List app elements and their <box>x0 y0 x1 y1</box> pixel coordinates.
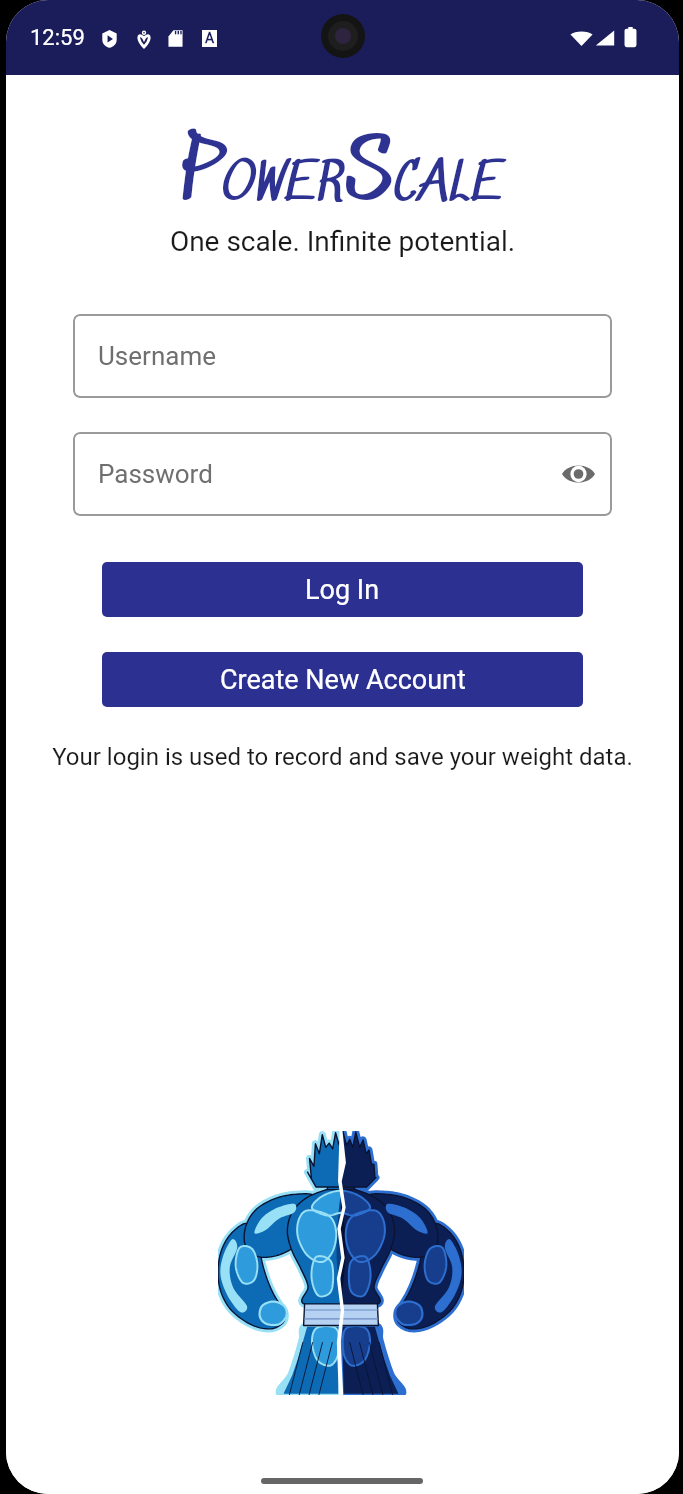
button[interactable]: Log In <box>102 562 583 617</box>
button[interactable]: Show password <box>556 452 600 496</box>
staticText: Your login is used to record and save yo… <box>6 743 679 771</box>
button[interactable]: Create New Account <box>102 652 583 707</box>
staticText: One scale. Infinite potential. <box>6 225 679 258</box>
staticText: 12:59 <box>30 25 85 51</box>
staticText: Username <box>98 341 216 371</box>
staticText: Password <box>98 459 213 489</box>
staticText: Create New Account <box>220 664 466 696</box>
staticText: Log In <box>305 574 380 606</box>
staticText: POWERSCALE <box>6 127 679 202</box>
button[interactable]: Username <box>73 314 612 398</box>
staticText: A <box>205 30 215 46</box>
button[interactable]: Password <box>73 432 612 516</box>
